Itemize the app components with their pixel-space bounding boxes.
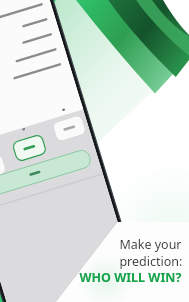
button[interactable]: Make your prediction: who will win promo <box>0 0 189 302</box>
